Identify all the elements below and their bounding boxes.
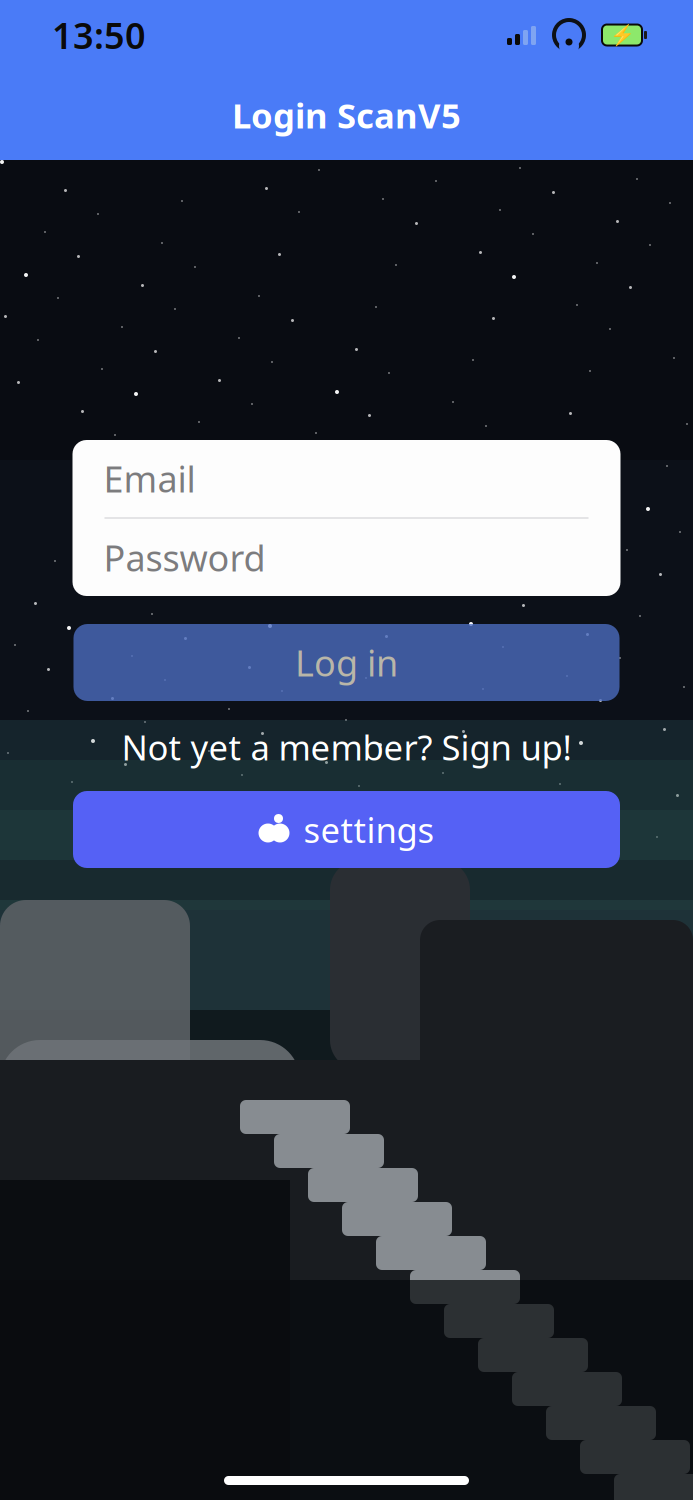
button[interactable]: Email [72, 440, 620, 517]
staticText: ⚡ [609, 24, 634, 46]
staticText: Log in [295, 639, 398, 686]
staticText: 13:50 [52, 11, 146, 59]
staticText: Email [103, 455, 195, 502]
button[interactable]: Log in [73, 624, 619, 701]
button[interactable]: Not yet a member? Sign up! [121, 729, 571, 765]
staticText: Password [103, 534, 265, 581]
button[interactable]: Password [72, 519, 620, 596]
button[interactable]: settings [73, 791, 620, 868]
staticText: Login ScanV5 [232, 92, 461, 138]
staticText: Not yet a member? Sign up! [121, 724, 571, 770]
staticText: settings [303, 806, 434, 852]
